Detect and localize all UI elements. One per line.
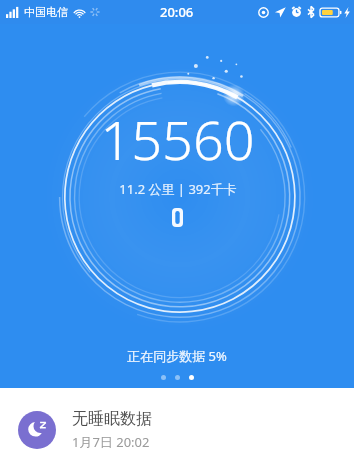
staticText: 正在同步数据 5% bbox=[127, 347, 227, 365]
staticText: 无睡眠数据 bbox=[72, 409, 152, 429]
staticText: 15560 bbox=[100, 102, 255, 176]
button[interactable]: 无睡眠数据 bbox=[0, 388, 354, 471]
staticText: 11.2 公里 | 392千卡 bbox=[119, 180, 237, 198]
staticText: 中国电信 bbox=[24, 5, 68, 19]
staticText: 20:06 bbox=[160, 3, 194, 21]
button[interactable]: Band battery bbox=[172, 208, 183, 227]
staticText: 1月7日 20:02 bbox=[72, 433, 150, 451]
